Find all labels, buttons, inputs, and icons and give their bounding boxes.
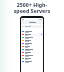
button[interactable]: [21, 60, 43, 63]
button[interactable]: [21, 51, 43, 54]
button[interactable]: [21, 45, 43, 48]
button[interactable]: Back: [21, 18, 43, 72]
button[interactable]: Back: [21, 20, 43, 24]
button[interactable]: [21, 48, 43, 51]
button[interactable]: [21, 57, 43, 60]
button[interactable]: [22, 25, 42, 28]
button[interactable]: [21, 33, 43, 36]
button[interactable]: 2500+ High- speed Servers: [2, 1, 62, 14]
button[interactable]: [21, 39, 43, 42]
staticText: 2500+ High- speed Servers: [2, 1, 62, 14]
button[interactable]: [21, 42, 43, 45]
button[interactable]: [21, 30, 43, 33]
button[interactable]: [21, 36, 43, 39]
button[interactable]: [21, 54, 43, 57]
